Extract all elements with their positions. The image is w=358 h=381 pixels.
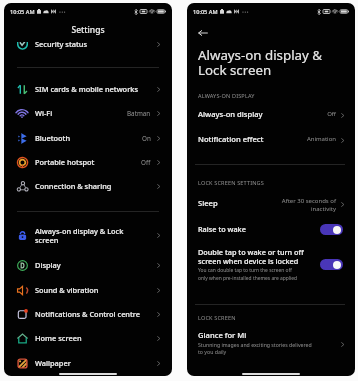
staticText: Off: [187, 110, 336, 118]
staticText: Always-on display & Lock screen: [198, 46, 323, 79]
staticText: Notification effect: [198, 134, 264, 144]
staticText: SIM cards & mobile networks: [35, 84, 155, 94]
button[interactable]: Notifications & Control centre: [4, 302, 172, 326]
staticText: Raise to wake: [198, 224, 246, 234]
staticText: 10:05 AM: [193, 8, 218, 16]
staticText: Security status: [35, 39, 155, 49]
staticText: Home screen: [35, 333, 155, 343]
button[interactable]: Wi-Fi: [4, 101, 172, 125]
button[interactable]: Sound & vibration: [4, 278, 172, 302]
button[interactable]: [187, 327, 355, 355]
staticText: Glance for Mi: [198, 330, 247, 340]
staticText: Animation: [187, 135, 336, 143]
button[interactable]: Bluetooth: [4, 126, 172, 150]
button[interactable]: Wallpaper: [4, 351, 172, 375]
staticText: Bluetooth: [35, 133, 142, 143]
button[interactable]: Portable hotspot: [4, 150, 172, 174]
staticText: Batman: [127, 109, 151, 118]
staticText: Sleep: [198, 198, 218, 208]
button[interactable]: Security status: [4, 32, 172, 56]
staticText: Always-on display: [198, 109, 263, 119]
button[interactable]: Toggle: [320, 259, 343, 270]
button[interactable]: [187, 131, 355, 151]
staticText: Double tap to wake or turn off screen wh…: [198, 247, 304, 266]
staticText: On: [142, 134, 151, 143]
button[interactable]: SIM cards & mobile networks: [4, 77, 172, 101]
button[interactable]: Toggle: [320, 224, 343, 235]
button[interactable]: Connection & sharing: [4, 174, 172, 198]
staticText: Portable hotspot: [35, 157, 141, 167]
staticText: Always-on display & Lock screen: [35, 226, 155, 245]
staticText: Wallpaper: [35, 358, 155, 368]
staticText: 10:05 AM: [10, 8, 35, 16]
staticText: Notifications & Control centre: [35, 309, 155, 319]
staticText: Wi-Fi: [35, 108, 127, 118]
staticText: ALWAYS-ON DISPLAY: [198, 92, 255, 100]
staticText: You can double tap to turn the screen of…: [198, 267, 298, 281]
staticText: Off: [141, 158, 151, 167]
staticText: Stunning images and exciting stories del…: [198, 341, 312, 355]
staticText: Sound & vibration: [35, 285, 155, 295]
button[interactable]: Back: [195, 25, 211, 41]
staticText: Display: [35, 260, 155, 270]
button[interactable]: Display: [4, 253, 172, 277]
button[interactable]: Home screen: [4, 326, 172, 350]
staticText: After 30 seconds of inactivity: [187, 197, 336, 213]
button[interactable]: Always-on display & Lock screen: [4, 223, 172, 247]
button[interactable]: [187, 194, 355, 214]
staticText: LOCK SCREEN SETTINGS: [198, 179, 264, 187]
staticText: Settings: [4, 24, 172, 36]
staticText: Connection & sharing: [35, 181, 155, 191]
staticText: LOCK SCREEN: [198, 314, 236, 322]
button[interactable]: [187, 106, 355, 126]
